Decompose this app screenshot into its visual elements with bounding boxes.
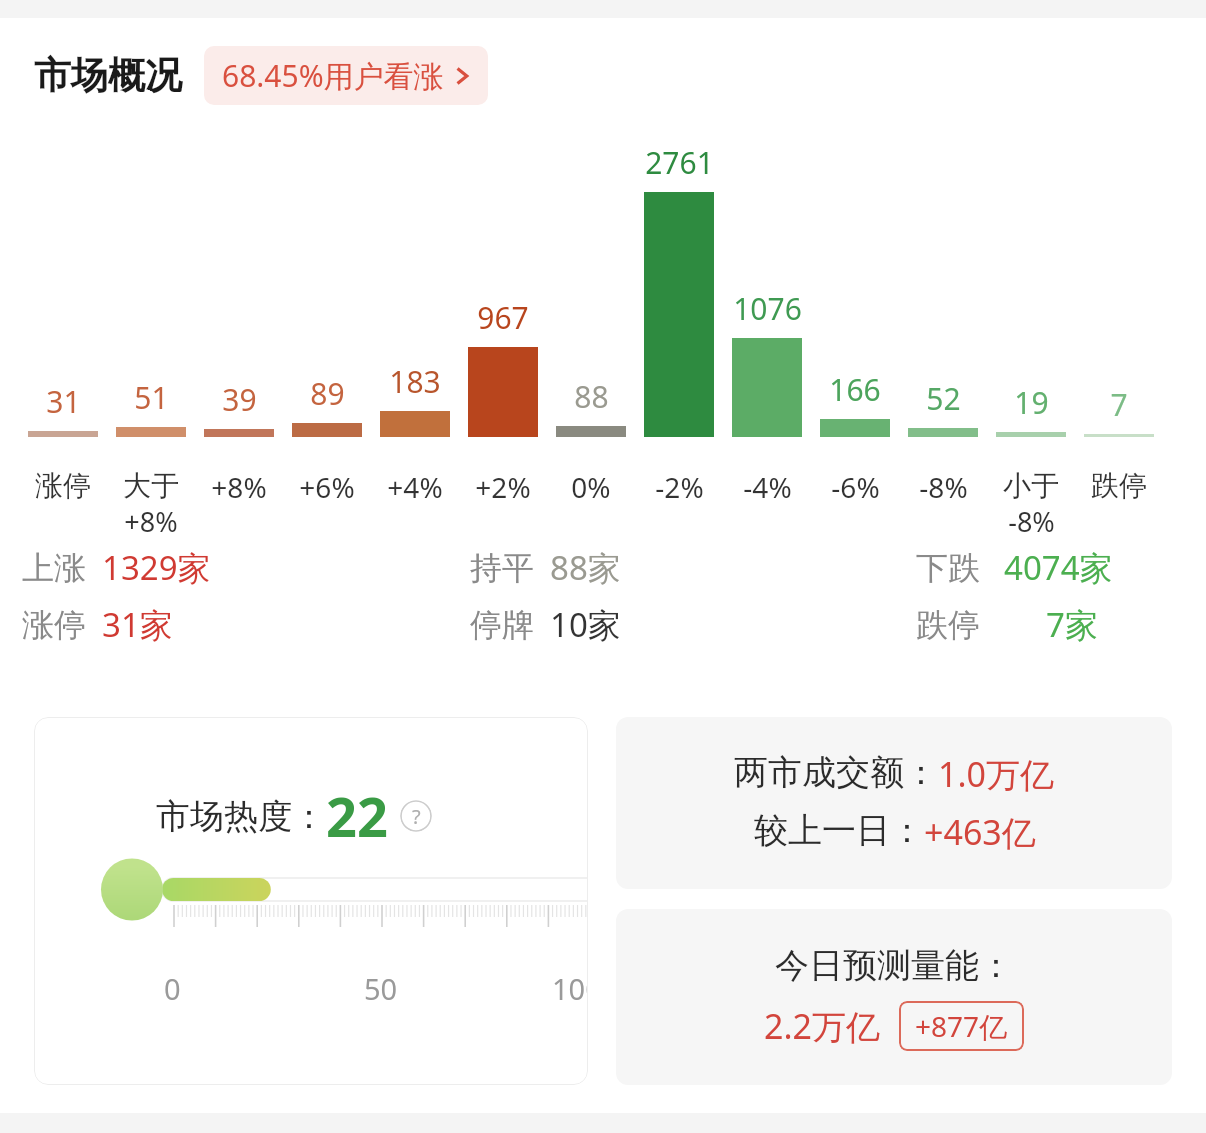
staticText: 88家 xyxy=(550,545,621,590)
staticText: -8% xyxy=(919,468,968,506)
staticText: 7家 xyxy=(1046,602,1098,647)
staticText: +8% xyxy=(211,468,267,506)
staticText: 市场热度： xyxy=(156,795,326,838)
staticText: +463亿 xyxy=(924,809,1036,855)
staticText: 51 xyxy=(134,377,169,418)
staticText: 停牌 xyxy=(470,605,534,645)
staticText: 2.2万亿 xyxy=(764,1003,881,1049)
staticText: 1329家 xyxy=(102,545,211,590)
staticText: -4% xyxy=(743,468,792,506)
staticText: +877亿 xyxy=(915,1007,1008,1045)
staticText: 166 xyxy=(829,369,881,410)
staticText: 小于 xyxy=(1003,468,1059,503)
staticText: 967 xyxy=(477,297,529,338)
staticText: -6% xyxy=(831,468,880,506)
button[interactable]: 两市成交额： xyxy=(616,717,1172,889)
staticText: 1.0万亿 xyxy=(938,751,1055,797)
staticText: +4% xyxy=(387,468,443,506)
staticText: -8% xyxy=(1008,503,1055,540)
button[interactable]: 热度说明 xyxy=(400,800,432,832)
staticText: 68.45%用户看涨 xyxy=(222,55,444,96)
staticText: ? xyxy=(412,803,421,830)
staticText: 市场概况 xyxy=(34,52,182,99)
staticText: 50 xyxy=(364,969,398,1008)
button[interactable]: 今日预测量能： xyxy=(616,909,1172,1085)
staticText: 31家 xyxy=(102,602,173,647)
staticText: 88 xyxy=(574,376,609,417)
staticText: 52 xyxy=(926,378,961,419)
staticText: 183 xyxy=(389,361,441,402)
staticText: 下跌 xyxy=(916,548,980,588)
staticText: +6% xyxy=(299,468,355,506)
staticText: 7 xyxy=(1110,384,1128,425)
staticText: 39 xyxy=(222,379,257,420)
staticText: 22 xyxy=(326,779,388,853)
staticText: 大于 xyxy=(123,468,179,503)
button[interactable]: 市场热度： xyxy=(34,717,588,1085)
staticText: 2761 xyxy=(645,142,714,183)
staticText: 涨停 xyxy=(35,468,91,503)
staticText: 0% xyxy=(571,468,611,506)
staticText: 19 xyxy=(1014,382,1049,423)
staticText: 1076 xyxy=(733,288,802,329)
staticText: 10家 xyxy=(550,602,621,647)
staticText: 跌停 xyxy=(916,605,980,645)
staticText: 31 xyxy=(46,381,81,422)
staticText: 持平 xyxy=(470,548,534,588)
staticText: +2% xyxy=(475,468,531,506)
staticText: 较上一日： xyxy=(754,809,924,852)
staticText: 涨停 xyxy=(22,605,86,645)
staticText: -2% xyxy=(655,468,704,506)
staticText: 4074家 xyxy=(1004,545,1113,590)
staticText: 上涨 xyxy=(22,548,86,588)
button[interactable]: 68.45%用户看涨 xyxy=(204,46,488,105)
staticText: 两市成交额： xyxy=(734,751,938,794)
staticText: 今日预测量能： xyxy=(775,944,1013,987)
staticText: 89 xyxy=(310,373,345,414)
staticText: +8% xyxy=(124,503,178,540)
staticText: 0 xyxy=(164,969,181,1008)
staticText: 100 xyxy=(552,969,588,1008)
staticText: 跌停 xyxy=(1091,468,1147,503)
